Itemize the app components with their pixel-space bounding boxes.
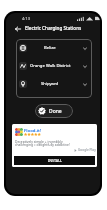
button[interactable]: Belize (16, 39, 92, 57)
button[interactable]: Done (35, 104, 73, 118)
button[interactable]: Back (13, 24, 22, 34)
button[interactable]: Orange Walk District (16, 57, 92, 75)
staticText: Belize (44, 45, 56, 51)
staticText: Orange Walk District (30, 63, 71, 69)
staticText: Deceptively simple + incredibly challeng… (15, 139, 79, 147)
staticText: Done (49, 108, 62, 115)
staticText: INSTALL (48, 158, 62, 163)
staticText: Flood-it! (24, 128, 42, 134)
button[interactable]: INSTALL (14, 156, 95, 165)
staticText: Electric Charging Stations (25, 25, 82, 31)
staticText: 4:13 (22, 16, 30, 21)
staticText: Google Play (78, 148, 96, 152)
staticText: Shipyard (41, 81, 59, 87)
button[interactable]: Shipyard (16, 75, 92, 93)
